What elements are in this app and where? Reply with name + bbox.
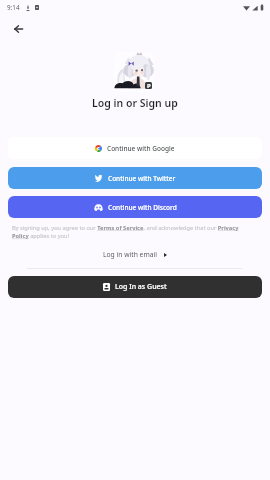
button[interactable]: Log In as Guest xyxy=(8,276,262,298)
button[interactable]: Back xyxy=(7,18,29,40)
staticText: By signing up, you agree to our Terms of… xyxy=(12,224,244,240)
staticText: 9:14 xyxy=(7,3,20,12)
staticText: P xyxy=(147,82,151,89)
staticText: Continue with Google xyxy=(107,144,175,153)
button[interactable]: Continue with Google xyxy=(8,137,262,159)
button[interactable]: Continue with Discord xyxy=(8,196,262,218)
button[interactable]: Log in with email xyxy=(100,248,170,261)
staticText: Continue with Twitter xyxy=(108,174,176,183)
button[interactable]: Continue with Twitter xyxy=(8,167,262,189)
staticText: Continue with Discord xyxy=(108,203,177,212)
staticText: Log in or Sign up xyxy=(92,96,178,110)
staticText: Log In as Guest xyxy=(115,282,167,292)
staticText: Log in with email xyxy=(103,250,157,259)
